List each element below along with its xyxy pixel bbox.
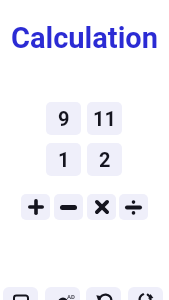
staticText: 11 <box>93 107 116 130</box>
button[interactable]: 1 <box>46 143 81 176</box>
staticText: 2 <box>99 148 111 171</box>
staticText: 9 <box>58 107 70 130</box>
button[interactable]: Undo <box>86 287 121 300</box>
button[interactable]: 2 <box>87 143 122 176</box>
button[interactable]: 11 <box>87 102 122 135</box>
button[interactable]: Minus <box>54 194 83 220</box>
staticText: Calculation <box>11 21 158 55</box>
button[interactable]: Keyboard <box>3 287 38 300</box>
button[interactable]: Divide <box>119 194 148 220</box>
staticText: 1 <box>58 148 70 171</box>
button[interactable]: Advertisement <box>45 287 80 300</box>
button[interactable]: History <box>128 287 163 300</box>
button[interactable]: Plus <box>21 194 50 220</box>
button[interactable]: Multiply <box>87 194 116 220</box>
staticText: AD <box>67 293 75 300</box>
button[interactable]: 9 <box>46 102 81 135</box>
